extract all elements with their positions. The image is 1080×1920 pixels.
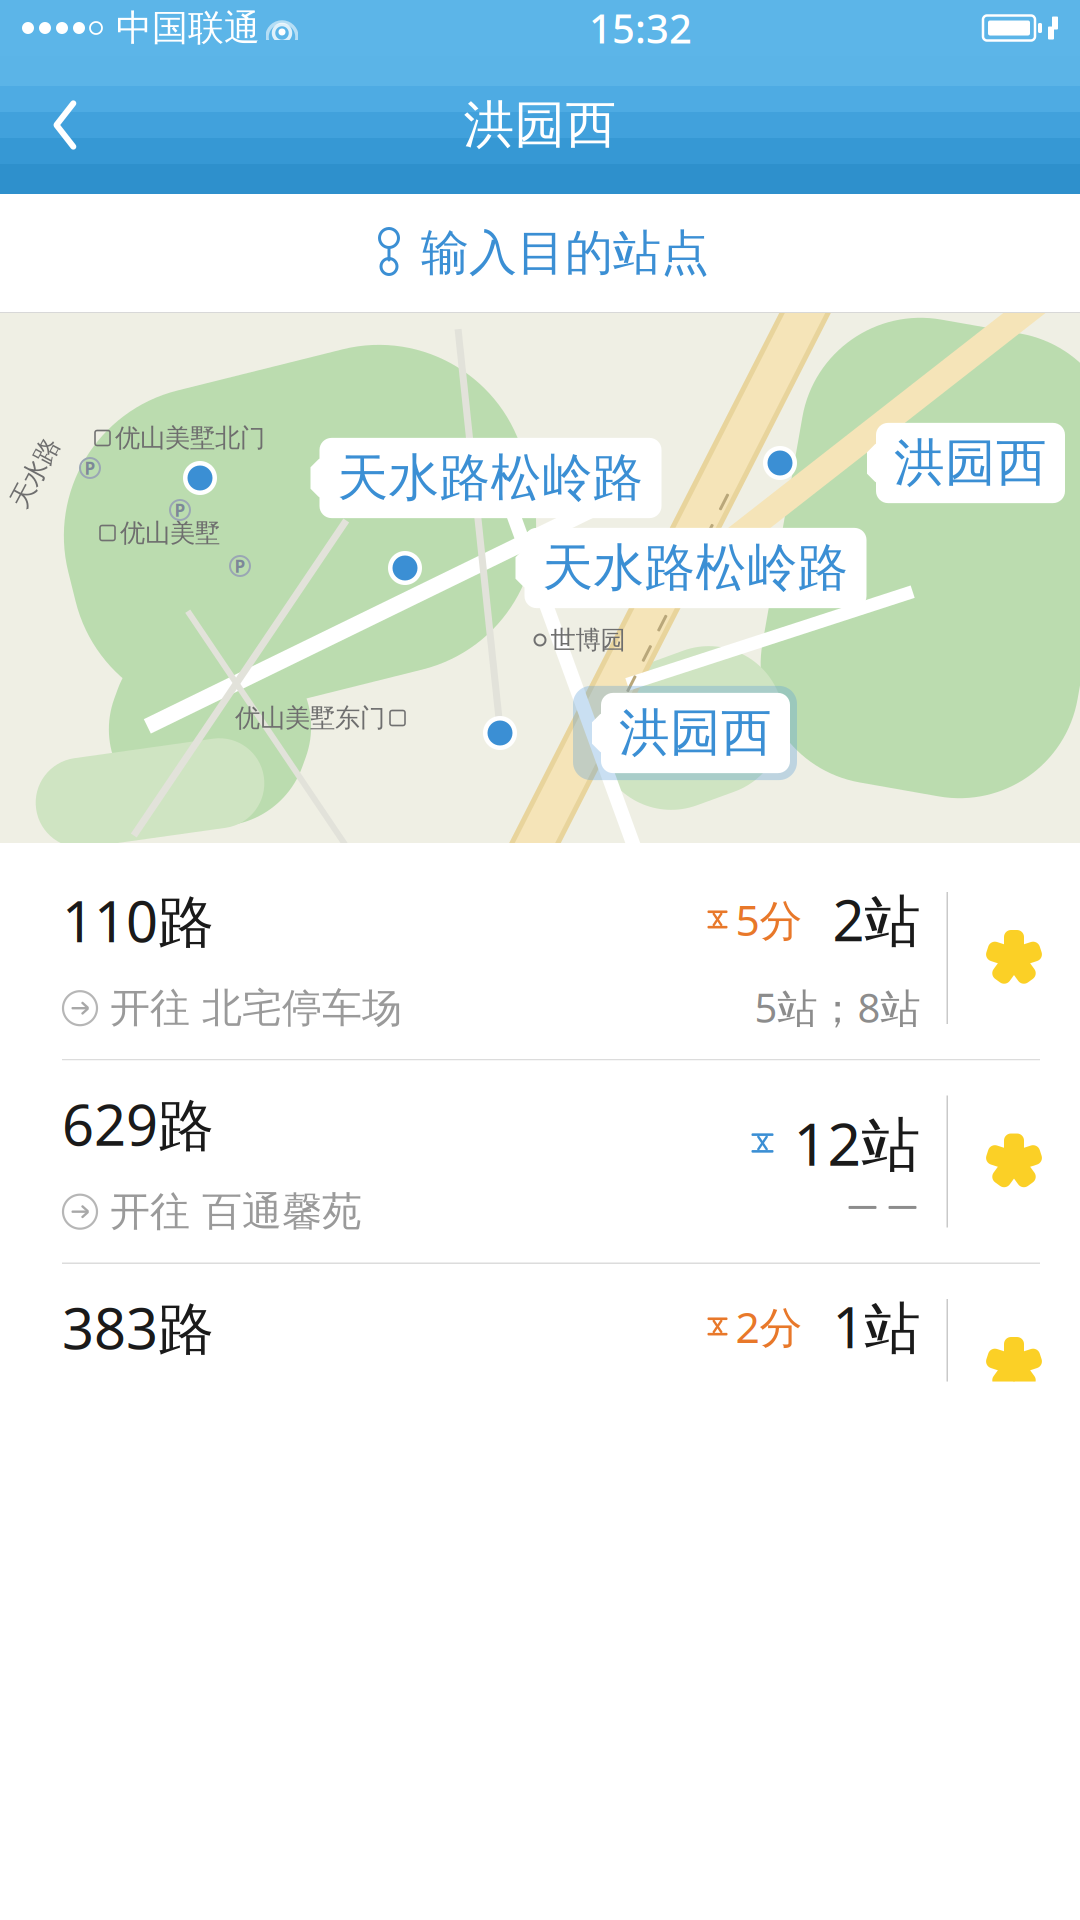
button[interactable]: 返回 — [0, 73, 116, 177]
staticText: 天水路 — [0, 457, 72, 488]
staticText: 1站 — [832, 1289, 920, 1364]
staticText: 输入目的站点 — [421, 223, 709, 282]
button[interactable]: 383路 — [0, 1264, 1080, 1466]
staticText: P — [84, 456, 95, 479]
staticText: 北宅停车场 — [202, 984, 402, 1033]
staticText: 629路 — [62, 1087, 214, 1161]
staticText: 天水路松岭路 — [337, 447, 643, 509]
staticText: 5站；8站 — [754, 981, 920, 1034]
staticText: 开往 — [110, 1187, 190, 1236]
button[interactable]: 输入目的站点 — [0, 194, 1080, 312]
staticText: 百通馨苑 — [202, 1187, 362, 1236]
staticText: 洪园西 — [619, 702, 772, 764]
staticText: 开往 — [110, 984, 190, 1033]
staticText: 2站 — [832, 882, 920, 957]
staticText: 110路 — [62, 883, 214, 958]
staticText: 洪园西 — [463, 94, 616, 156]
staticText: 5分 — [735, 891, 802, 948]
staticText: 15:32 — [589, 1, 692, 54]
staticText: 世博园 — [550, 624, 625, 655]
button[interactable]: 110路 — [0, 857, 1080, 1059]
staticText: 优山美墅 — [120, 517, 220, 548]
staticText: 优山美墅北门 — [115, 422, 265, 453]
staticText: 天水路松岭路 — [542, 537, 848, 599]
staticText: 中国联通 — [116, 6, 260, 50]
button[interactable]: 629路 — [0, 1060, 1080, 1262]
staticText: P — [174, 498, 185, 521]
staticText: 12站 — [793, 1104, 920, 1182]
staticText: P — [234, 554, 245, 577]
staticText: 2分 — [735, 1298, 802, 1355]
staticText: 优山美墅东门 — [235, 702, 385, 733]
staticText: 洪园西 — [894, 432, 1047, 494]
staticText: 383路 — [62, 1290, 214, 1365]
